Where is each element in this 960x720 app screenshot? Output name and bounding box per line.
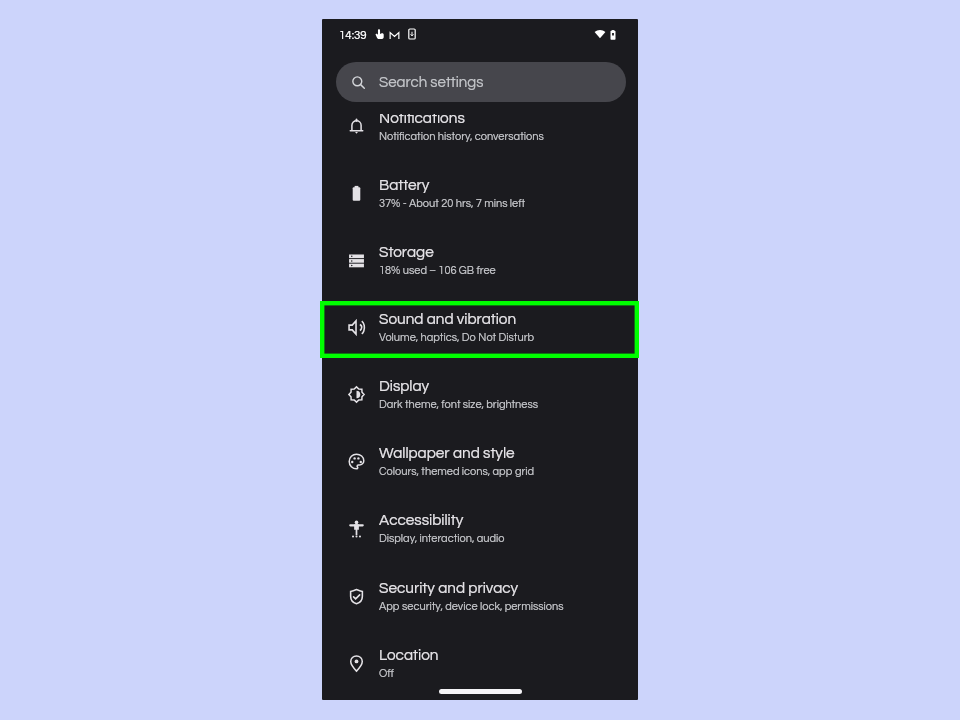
staticText: Search settings [379, 75, 484, 90]
staticText: Dark theme, font size, brightness [379, 399, 539, 410]
button[interactable]: Storage [322, 227, 638, 294]
staticText: App security, device lock, permissions [379, 601, 564, 612]
button[interactable]: Location [322, 630, 638, 697]
button[interactable]: Search settings [336, 62, 626, 102]
staticText: Storage [379, 244, 434, 260]
staticText: Display, interaction, audio [379, 533, 505, 544]
staticText: Colours, themed icons, app grid [379, 466, 535, 477]
staticText: 37% - About 20 hrs, 7 mins left [379, 198, 526, 209]
button[interactable]: Accessibility [322, 495, 638, 562]
button[interactable]: Wallpaper and style [322, 428, 638, 495]
button[interactable]: Sound and vibration [322, 294, 638, 361]
button[interactable]: Display [322, 361, 638, 428]
button[interactable]: Battery [322, 160, 638, 227]
staticText: Sound and vibration [379, 311, 517, 327]
staticText: Wallpaper and style [379, 445, 515, 461]
staticText: Accessibility [379, 512, 464, 528]
button[interactable]: Security and privacy [322, 563, 638, 630]
staticText: Notifications [379, 114, 465, 126]
staticText: Security and privacy [379, 580, 519, 596]
staticText: Display [379, 378, 430, 394]
button[interactable]: Notifications [322, 114, 638, 160]
staticText: Off [379, 668, 394, 679]
staticText: Battery [379, 177, 430, 193]
staticText: 14:39 [339, 30, 367, 42]
staticText: Volume, haptics, Do Not Disturb [379, 332, 534, 343]
staticText: Notification history, conversations [379, 131, 544, 142]
staticText: Location [379, 647, 439, 663]
other: Home gesture bar [439, 689, 522, 694]
staticText: 18% used – 106 GB free [379, 265, 496, 276]
